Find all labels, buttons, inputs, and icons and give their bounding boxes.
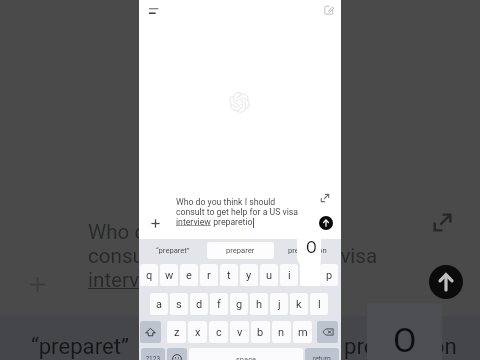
button[interactable]: x [188, 321, 207, 343]
staticText: b [257, 326, 264, 339]
button[interactable]: preparation [274, 239, 341, 262]
button[interactable]: Add attachment [147, 215, 163, 231]
staticText: “preparet” [31, 333, 129, 359]
button[interactable]: return [305, 348, 339, 360]
button[interactable]: Shift [140, 321, 161, 343]
button[interactable]: g [230, 293, 248, 315]
button[interactable]: j [270, 293, 288, 315]
button[interactable]: preparer [207, 242, 274, 259]
button[interactable]: space [189, 348, 303, 360]
staticText: i [288, 269, 291, 282]
button[interactable]: y [240, 264, 258, 286]
staticText: k [296, 298, 302, 311]
staticText: preparer [226, 246, 255, 255]
staticText: m [298, 326, 308, 339]
button[interactable]: v [230, 321, 249, 343]
staticText: O [306, 239, 317, 257]
staticText: interview [176, 217, 211, 227]
staticText: j [278, 298, 281, 311]
button[interactable]: ?123 [141, 348, 165, 360]
button[interactable]: Send message [319, 216, 333, 230]
staticText: interview [88, 268, 171, 292]
button[interactable]: k [290, 293, 308, 315]
staticText: l [318, 298, 321, 311]
staticText: z [174, 326, 180, 339]
button[interactable]: n [272, 321, 291, 343]
button[interactable]: p [320, 264, 338, 286]
staticText: consult to get help for a US visa [176, 207, 298, 217]
staticText: e [186, 269, 192, 282]
staticText: preparetio [211, 217, 253, 227]
button[interactable]: i [280, 264, 298, 286]
staticText: g [236, 298, 243, 311]
staticText: s [176, 298, 182, 311]
staticText: x [195, 326, 201, 339]
staticText: u [266, 269, 273, 282]
staticText: return [313, 355, 331, 360]
staticText: a [156, 298, 162, 311]
staticText: preparer [199, 333, 282, 359]
staticText: preparetio [171, 268, 270, 292]
button[interactable]: Expand input [318, 191, 332, 205]
staticText: v [237, 326, 243, 339]
staticText: w [165, 269, 174, 282]
button[interactable]: a [150, 293, 168, 315]
staticText: Who do you think I should [88, 220, 324, 244]
staticText: Who do you think I should [176, 197, 276, 207]
staticText: ?123 [146, 355, 161, 360]
button[interactable]: q [140, 264, 158, 286]
staticText: f [217, 298, 221, 311]
button[interactable]: c [209, 321, 228, 343]
staticText: p [326, 269, 333, 282]
button[interactable]: l [310, 293, 328, 315]
staticText: consult to get help for a US visa [88, 244, 378, 268]
staticText: preparation [288, 246, 327, 255]
button[interactable]: m [293, 321, 312, 343]
staticText: O [393, 320, 417, 360]
staticText: space [236, 355, 257, 360]
button[interactable]: w [160, 264, 178, 286]
button[interactable]: z [167, 321, 186, 343]
button[interactable]: s [170, 293, 188, 315]
button[interactable]: h [250, 293, 268, 315]
staticText: d [196, 298, 203, 311]
staticText: c [216, 326, 222, 339]
staticText: preparation [344, 333, 457, 359]
button[interactable]: u [260, 264, 278, 286]
button[interactable]: Emoji [167, 348, 187, 360]
button[interactable]: t [220, 264, 238, 286]
button[interactable]: Menu [146, 2, 162, 18]
staticText: y [246, 269, 252, 282]
button[interactable]: “preparet” [139, 239, 207, 262]
button[interactable]: b [251, 321, 270, 343]
staticText: “preparet” [156, 246, 190, 255]
staticText: r [207, 269, 211, 282]
button[interactable]: d [190, 293, 208, 315]
button[interactable]: e [180, 264, 198, 286]
button[interactable]: New chat [320, 2, 336, 18]
staticText: n [278, 326, 285, 339]
button[interactable]: f [210, 293, 228, 315]
button[interactable]: Backspace [317, 321, 338, 343]
staticText: h [256, 298, 263, 311]
staticText: t [227, 269, 231, 282]
button[interactable]: r [200, 264, 218, 286]
staticText: q [146, 269, 153, 282]
